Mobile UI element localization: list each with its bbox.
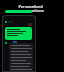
button[interactable] bbox=[5, 27, 32, 40]
button[interactable] bbox=[9, 43, 33, 71]
staticText: Personalized conversations bbox=[5, 4, 56, 13]
button[interactable] bbox=[5, 10, 32, 13]
